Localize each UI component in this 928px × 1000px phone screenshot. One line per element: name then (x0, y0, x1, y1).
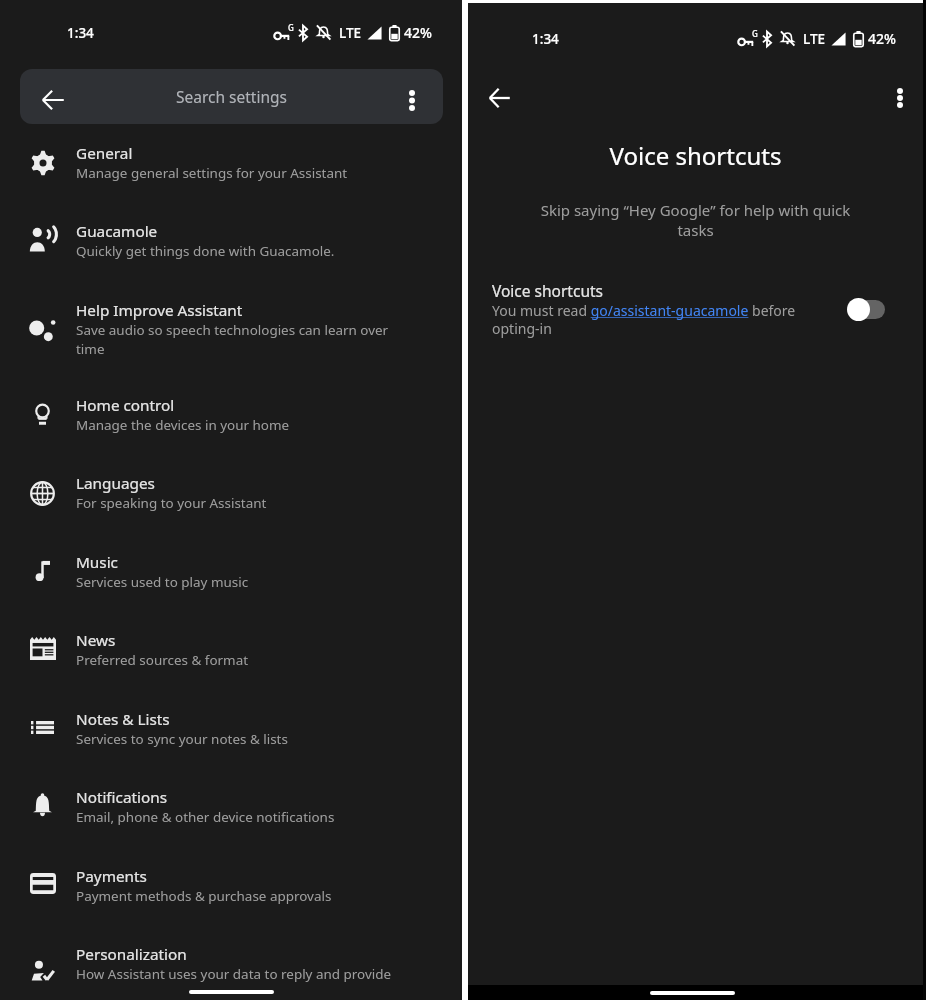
button[interactable]: News (0, 630, 462, 709)
staticText: 42% (868, 29, 896, 48)
staticText: Services to sync your notes & lists (76, 730, 288, 748)
button[interactable]: Voice shortcuts (468, 280, 923, 338)
button[interactable]: Search settings (20, 69, 443, 124)
staticText: Search settings (176, 86, 287, 107)
staticText: You must read go/assistant-guacamole bef… (492, 301, 799, 338)
button[interactable]: General (0, 143, 462, 221)
button[interactable]: Home control (0, 395, 462, 473)
staticText: Languages (76, 473, 155, 494)
staticText: For speaking to your Assistant (76, 494, 267, 512)
button[interactable]: Back (476, 75, 522, 121)
staticText: Notes & Lists (76, 709, 170, 730)
staticText: Payments (76, 866, 147, 887)
staticText: Voice shortcuts (492, 280, 603, 301)
staticText: Manage general settings for your Assista… (76, 164, 348, 182)
button[interactable]: Payments (0, 866, 462, 944)
staticText: Music (76, 552, 118, 573)
button[interactable]: Music (0, 552, 462, 630)
staticText: G (752, 28, 758, 39)
staticText: Skip saying “Hey Google” for help with q… (488, 200, 903, 240)
staticText: 42% (404, 23, 432, 42)
button[interactable]: Guacamole (0, 221, 462, 300)
staticText: G (288, 22, 294, 33)
button[interactable]: Voice shortcuts toggle (847, 292, 893, 326)
staticText: LTE (803, 30, 826, 48)
staticText: How Assistant uses your data to reply an… (76, 965, 392, 983)
staticText: Save audio so speech technologies can le… (76, 321, 404, 358)
staticText: Email, phone & other device notification… (76, 808, 335, 826)
button[interactable]: Languages (0, 473, 462, 552)
button[interactable]: Notifications (0, 787, 462, 866)
button[interactable]: Help Improve Assistant (0, 300, 462, 395)
staticText: 1:34 (67, 24, 94, 42)
button[interactable]: Notes & Lists (0, 709, 462, 787)
button[interactable]: More options (390, 78, 434, 122)
staticText: Guacamole (76, 221, 158, 242)
staticText: Voice shortcuts (468, 139, 923, 172)
staticText: Payment methods & purchase approvals (76, 887, 332, 905)
staticText: General (76, 143, 133, 164)
staticText: 1:34 (532, 30, 559, 48)
staticText: Notifications (76, 787, 167, 808)
button[interactable]: Back (31, 78, 75, 122)
button[interactable]: More options (878, 76, 922, 120)
staticText: Manage the devices in your home (76, 416, 290, 434)
staticText: Quickly get things done with Guacamole. (76, 242, 335, 260)
staticText: Help Improve Assistant (76, 300, 243, 321)
staticText: LTE (339, 24, 362, 42)
staticText: News (76, 630, 116, 651)
button[interactable]: Personalization (0, 944, 462, 1000)
staticText: Preferred sources & format (76, 651, 249, 669)
staticText: Personalization (76, 944, 187, 965)
staticText: Services used to play music (76, 573, 249, 591)
staticText: Home control (76, 395, 175, 416)
